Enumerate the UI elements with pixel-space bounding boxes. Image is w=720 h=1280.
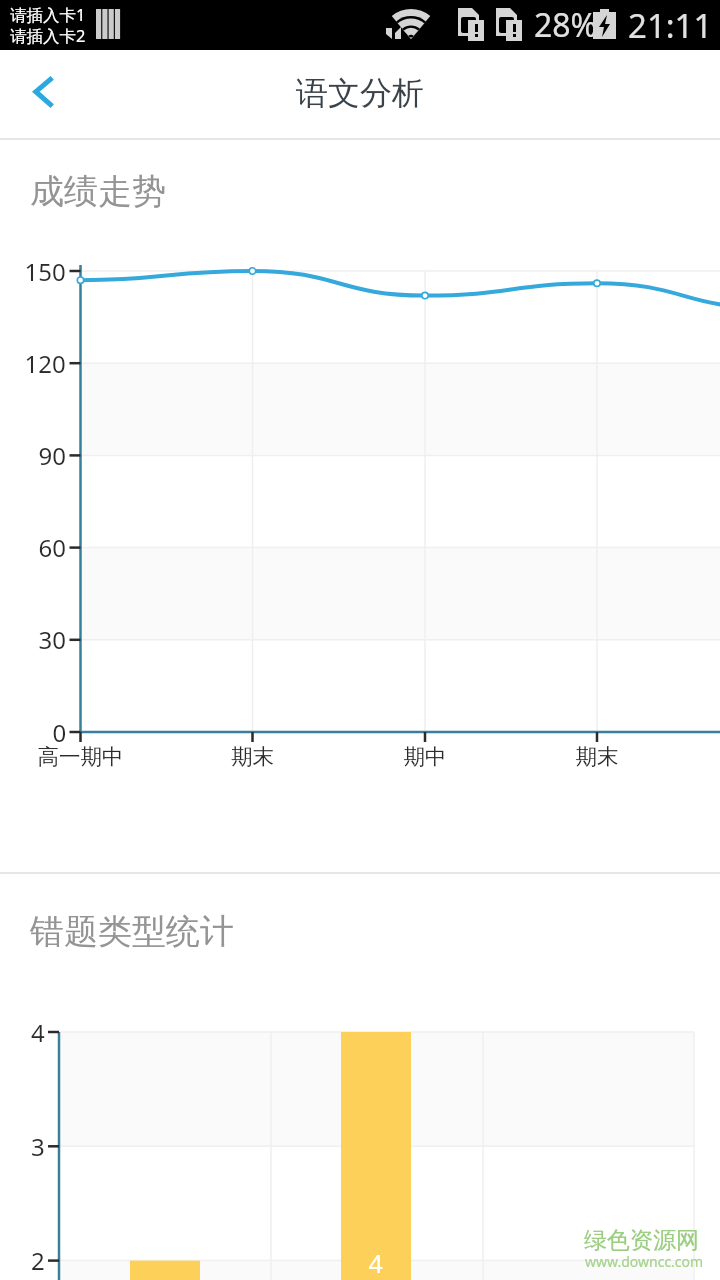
staticText: 21:11 [628, 3, 713, 48]
staticText: 请插入卡1 [10, 3, 86, 26]
staticText: 请插入卡2 [10, 24, 86, 47]
button[interactable]: Back [0, 50, 88, 138]
staticText: 错题类型统计 [30, 910, 234, 953]
staticText: 成绩走势 [30, 170, 166, 213]
staticText: www.downcc.com [585, 1252, 704, 1271]
staticText: 28% [534, 3, 598, 47]
staticText: 语文分析 [296, 73, 424, 113]
staticText: 绿色资源网 [584, 1226, 699, 1255]
